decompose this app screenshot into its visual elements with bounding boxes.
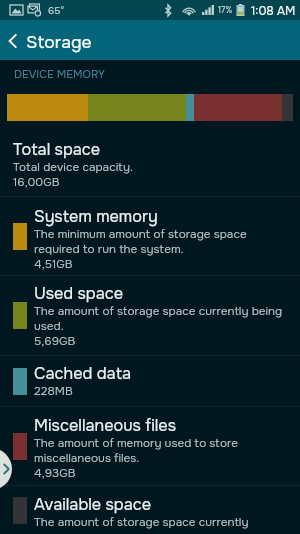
staticText: miscellaneous files. xyxy=(34,451,140,466)
button[interactable]: Total space xyxy=(0,121,300,196)
button[interactable]: System memory xyxy=(0,197,300,275)
staticText: 5,69GB xyxy=(34,334,76,349)
button[interactable]: Used space xyxy=(0,276,300,355)
staticText: 4,93GB xyxy=(34,466,76,481)
staticText: Total space xyxy=(13,139,101,160)
staticText: 4,51GB xyxy=(34,257,73,272)
staticText: DEVICE MEMORY xyxy=(14,67,105,81)
button[interactable]: Open edge panel xyxy=(0,448,12,490)
staticText: 1:08 AM xyxy=(251,3,296,18)
staticText: Storage xyxy=(26,31,92,53)
button[interactable]: Cached data xyxy=(0,356,300,406)
staticText: System memory xyxy=(34,206,158,227)
button[interactable]: Navigate up xyxy=(0,20,26,60)
staticText: 16,00GB xyxy=(13,175,60,190)
staticText: required to run the system. xyxy=(34,242,184,257)
staticText: The amount of storage space currently xyxy=(34,515,249,530)
staticText: used. xyxy=(34,319,64,334)
staticText: Used space xyxy=(34,283,124,304)
staticText: 65° xyxy=(48,4,65,17)
staticText: The amount of storage space currently be… xyxy=(34,304,283,319)
staticText: Miscellaneous files xyxy=(34,415,176,436)
button[interactable]: Available space xyxy=(0,486,300,534)
staticText: Total device capacity. xyxy=(13,160,133,175)
staticText: The minimum amount of storage space xyxy=(34,227,247,242)
staticText: 228MB xyxy=(34,384,73,399)
staticText: Available space xyxy=(34,494,152,515)
staticText: Cached data xyxy=(34,363,132,384)
staticText: 17% xyxy=(218,5,233,16)
staticText: The amount of memory used to store xyxy=(34,436,239,451)
button[interactable]: Miscellaneous files xyxy=(0,407,300,485)
